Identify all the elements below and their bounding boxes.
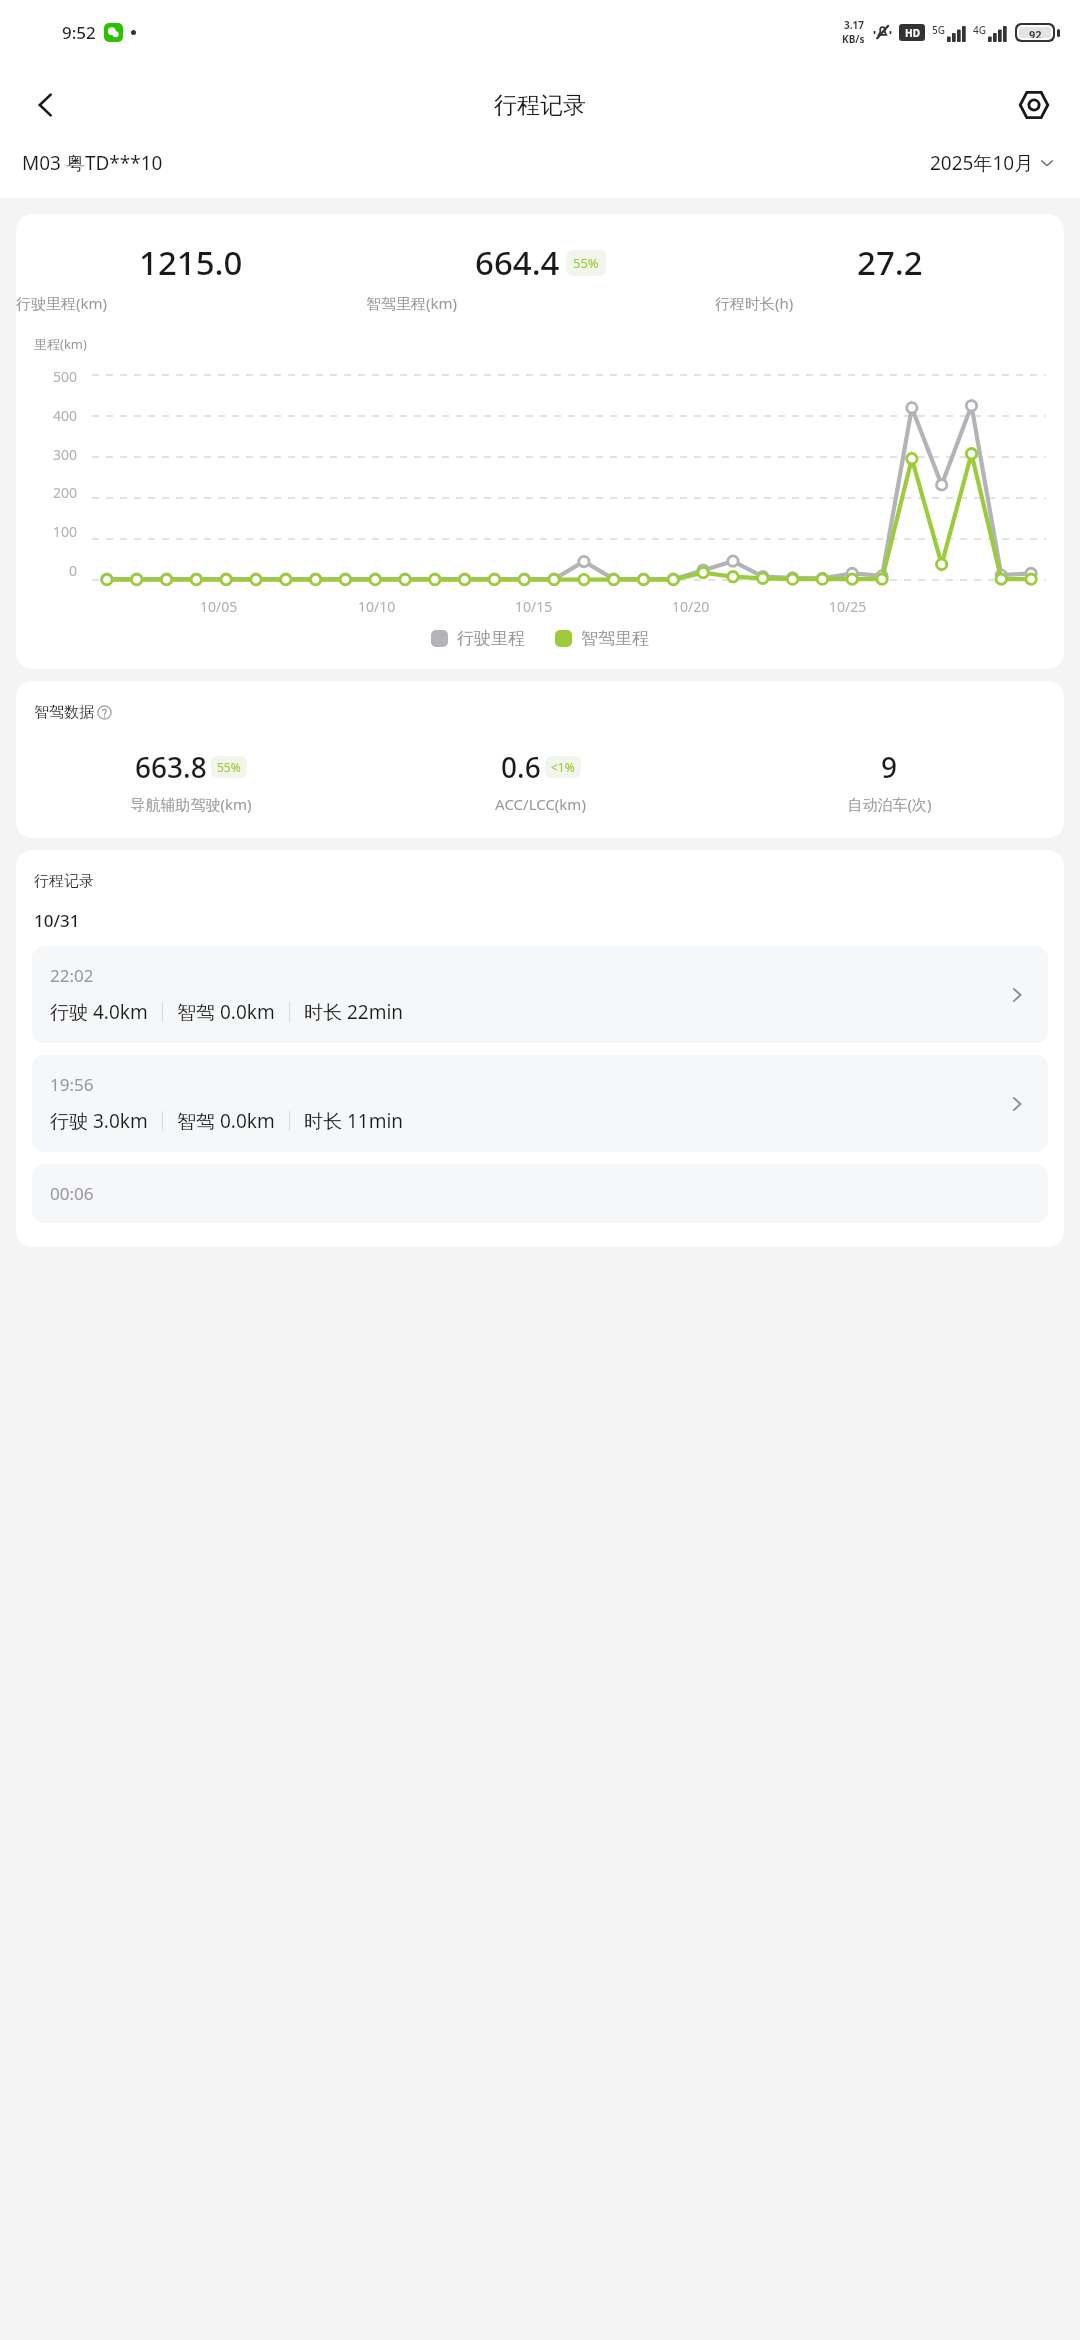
staticText: 19:56 (50, 1073, 94, 1096)
staticText: 0 (69, 561, 78, 580)
staticText: 300 (53, 445, 78, 464)
staticText: 5G (932, 23, 945, 37)
button[interactable]: 设置 (1006, 77, 1062, 133)
staticText: 智驾里程 (581, 628, 649, 649)
staticText: 55% (573, 254, 599, 272)
staticText: 200 (53, 483, 78, 502)
staticText: 10/10 (358, 597, 396, 616)
staticText: 664.4 (475, 240, 560, 285)
staticText: 行驶里程(km) (16, 293, 366, 313)
staticText: 9:52 (62, 21, 96, 44)
staticText: 55% (217, 759, 241, 775)
staticText: 22:02 (50, 964, 94, 987)
staticText: 10/31 (34, 909, 80, 932)
staticText: 智驾数据 (34, 703, 94, 722)
staticText: 行程时长(h) (715, 293, 1064, 313)
staticText: 行程记录 (34, 872, 94, 891)
staticText: 智驾 0.0km (177, 999, 275, 1025)
button[interactable]: 19:56 (32, 1055, 1048, 1152)
staticText: KB/s (842, 32, 865, 46)
staticText: 自动泊车(次) (847, 794, 932, 814)
staticText: 0.6 (501, 748, 541, 786)
staticText: 行驶里程 (457, 628, 525, 649)
staticText: 10/25 (829, 597, 867, 616)
staticText: 智驾 0.0km (177, 1108, 275, 1134)
staticText: 92 (1029, 27, 1042, 38)
staticText: 400 (53, 406, 78, 425)
staticText: 9 (881, 748, 898, 786)
button[interactable]: 00:06 (32, 1164, 1048, 1223)
staticText: 10/15 (515, 597, 553, 616)
staticText: 时长 11min (304, 1108, 404, 1134)
button[interactable]: 返回 (18, 77, 74, 133)
staticText: 100 (53, 522, 78, 541)
staticText: 行驶 3.0km (50, 1108, 148, 1134)
staticText: 行程记录 (494, 91, 586, 120)
staticText: M03 粤TD***10 (22, 150, 163, 176)
staticText: <1% (551, 759, 575, 775)
staticText: 1215.0 (139, 240, 243, 285)
staticText: HD (905, 26, 920, 40)
staticText: 10/20 (672, 597, 710, 616)
staticText: 3.17 (844, 18, 864, 32)
staticText: 10/05 (200, 597, 238, 616)
staticText: 里程(km) (34, 335, 87, 353)
staticText: 导航辅助驾驶(km) (130, 794, 252, 814)
button[interactable]: 22:02 (32, 946, 1048, 1043)
staticText: 4G (973, 23, 986, 37)
staticText: 00:06 (50, 1182, 94, 1205)
staticText: 智驾里程(km) (366, 293, 715, 313)
staticText: ACC/LCC(km) (495, 794, 586, 814)
staticText: 27.2 (857, 240, 923, 285)
button[interactable]: 2025年10月 (926, 146, 1058, 180)
staticText: 663.8 (135, 748, 207, 786)
staticText: 500 (53, 367, 78, 386)
staticText: 2025年10月 (930, 150, 1034, 176)
staticText: 行驶 4.0km (50, 999, 148, 1025)
staticText: 时长 22min (304, 999, 404, 1025)
